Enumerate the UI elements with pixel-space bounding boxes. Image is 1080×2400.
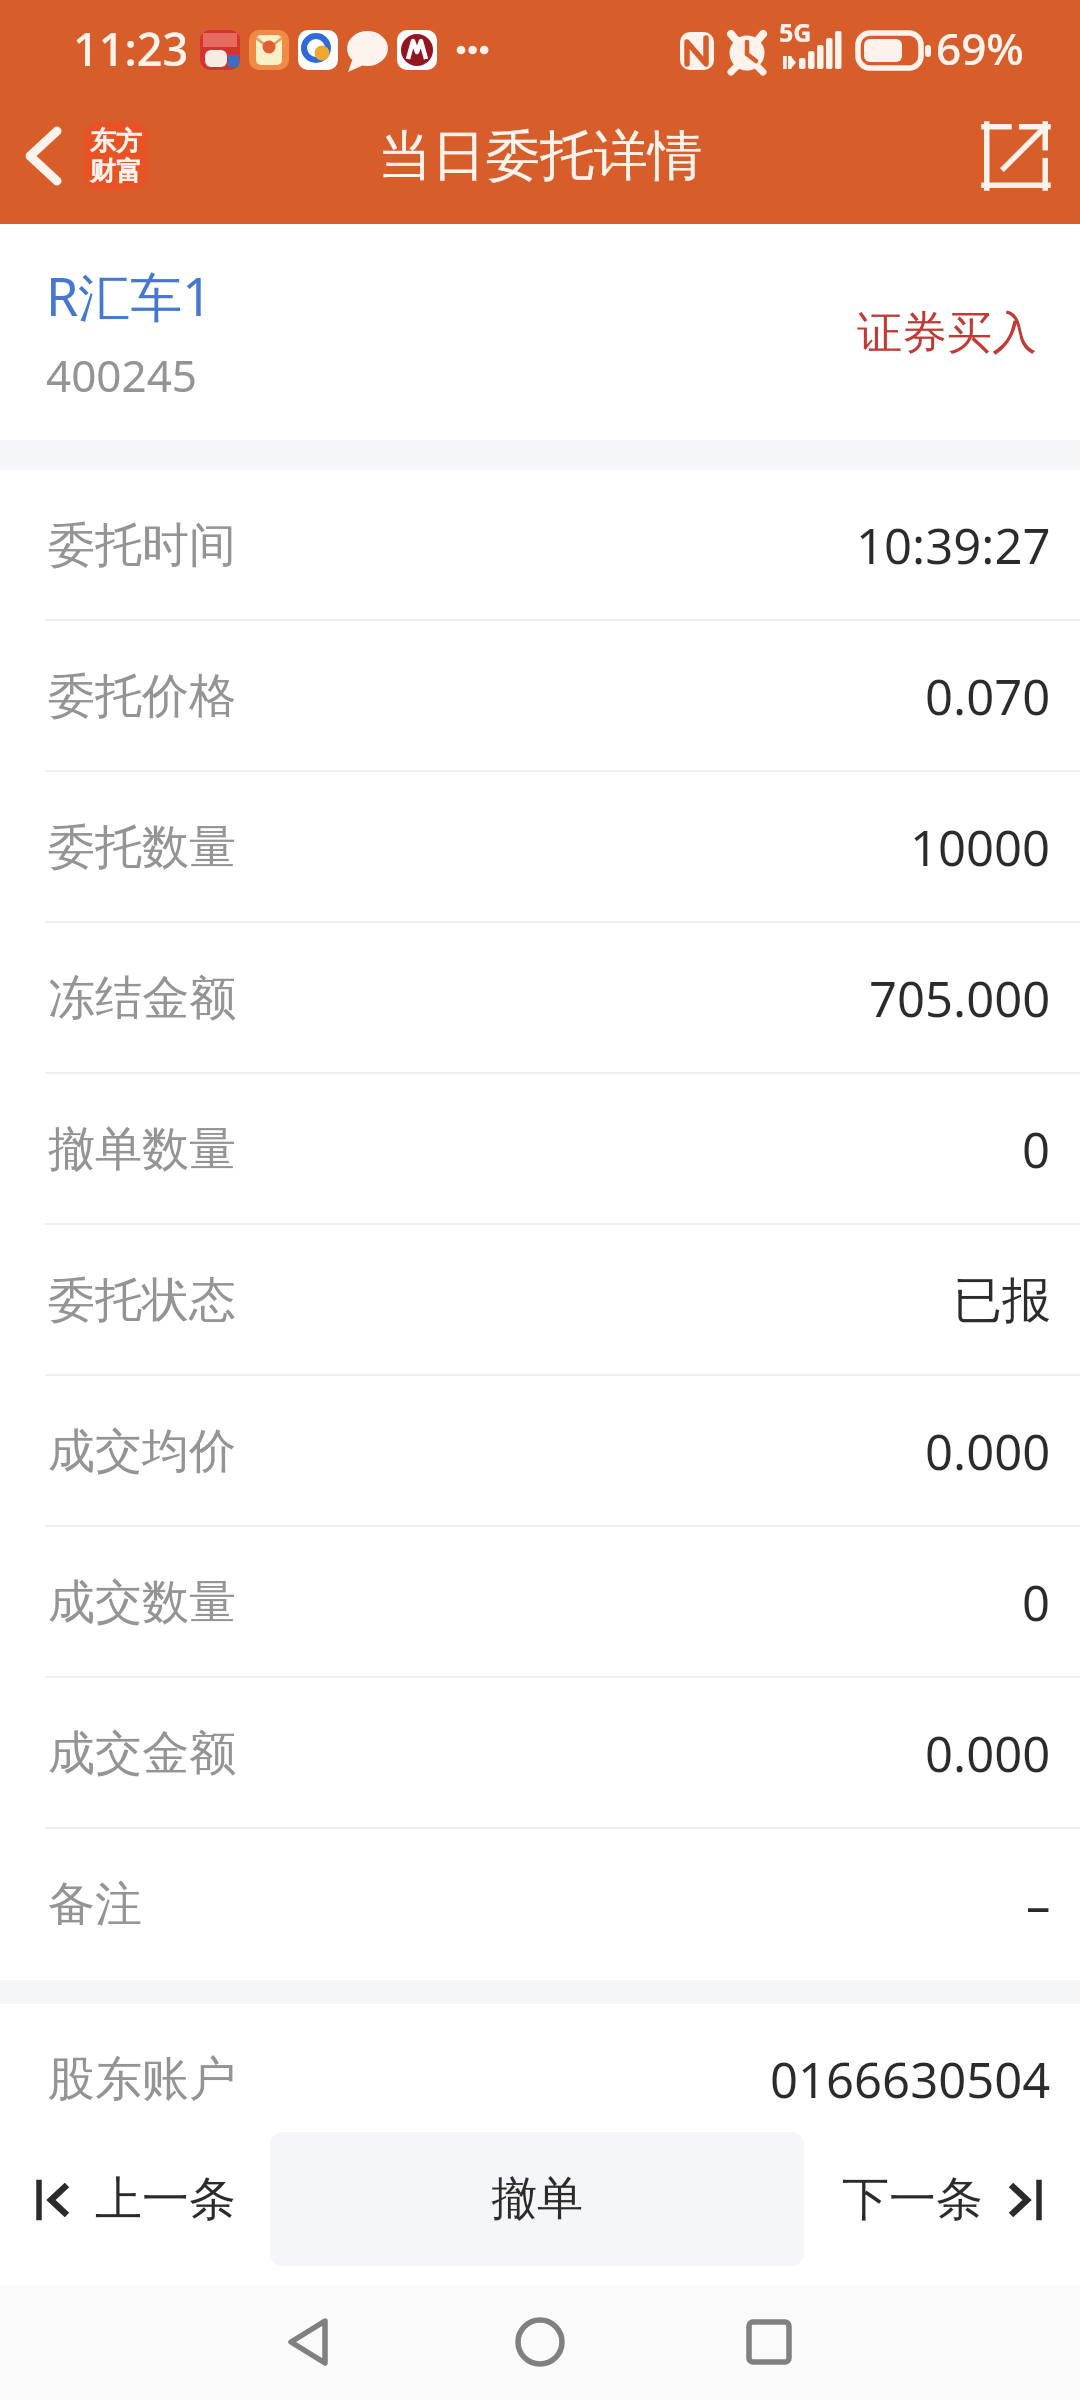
staticText: 705.000 (869, 965, 1051, 1032)
button[interactable]: Back (0, 2285, 360, 2400)
staticText: 0 (1022, 1116, 1051, 1183)
button[interactable]: 委托价格 (0, 621, 1080, 772)
button[interactable]: 成交金额 (0, 1678, 1080, 1829)
button[interactable]: 委托时间 (0, 470, 1080, 621)
staticText: 0166630504 (770, 2046, 1051, 2113)
button[interactable]: 撤单数量 (0, 1074, 1080, 1225)
staticText: 股东账户 (48, 2050, 236, 2109)
staticText: 成交金额 (48, 1724, 236, 1783)
staticText: 69% (936, 18, 1024, 78)
staticText: 11:23 (73, 18, 189, 79)
staticText: 10:39:27 (856, 512, 1051, 579)
staticText: 成交均价 (48, 1422, 236, 1481)
staticText: 0.000 (925, 1418, 1051, 1485)
button[interactable]: 上一条 (0, 2119, 270, 2285)
staticText: 当日委托详情 (378, 122, 702, 190)
button[interactable]: 冻结金额 (0, 923, 1080, 1074)
button[interactable]: 撤单 (270, 2132, 804, 2266)
button[interactable]: 东方 财富 (84, 122, 148, 190)
button[interactable]: 备注 (0, 1829, 1080, 1980)
staticText: 400245 (46, 345, 198, 405)
staticText: 备注 (48, 1875, 142, 1934)
staticText: 0.000 (925, 1720, 1051, 1787)
button[interactable]: Home (360, 2285, 720, 2400)
staticText: 委托数量 (48, 818, 236, 877)
button[interactable]: 成交数量 (0, 1527, 1080, 1678)
staticText: 委托时间 (48, 516, 236, 575)
staticText: 成交数量 (48, 1573, 236, 1632)
staticText: 已报 (953, 1270, 1051, 1332)
staticText: 0 (1022, 1569, 1051, 1636)
staticText: 5G (779, 15, 812, 49)
staticText: 撤单数量 (48, 1120, 236, 1179)
staticText: 冻结金额 (48, 969, 236, 1028)
staticText: 10000 (910, 814, 1051, 881)
staticText: 上一条 (95, 2170, 236, 2229)
staticText: 东方 财富 (90, 125, 142, 188)
button[interactable]: 下一条 (804, 2119, 1080, 2285)
staticText: 证券买入 (857, 305, 1037, 362)
button[interactable]: 委托状态 (0, 1225, 1080, 1376)
button[interactable]: 委托数量 (0, 772, 1080, 923)
staticText: 下一条 (842, 2170, 983, 2229)
staticText: 0.070 (925, 663, 1051, 730)
staticText: R汇车1 (46, 260, 213, 331)
staticText: 委托价格 (48, 667, 236, 726)
staticText: 撤单 (491, 2170, 583, 2228)
staticText: – (1026, 1871, 1051, 1938)
button[interactable]: Share (968, 108, 1064, 204)
button[interactable]: 成交均价 (0, 1376, 1080, 1527)
button[interactable]: Back (0, 113, 86, 199)
button[interactable]: 股东账户 (0, 2004, 1080, 2155)
button[interactable]: Recents (720, 2285, 1080, 2400)
staticText: 委托状态 (48, 1271, 236, 1330)
